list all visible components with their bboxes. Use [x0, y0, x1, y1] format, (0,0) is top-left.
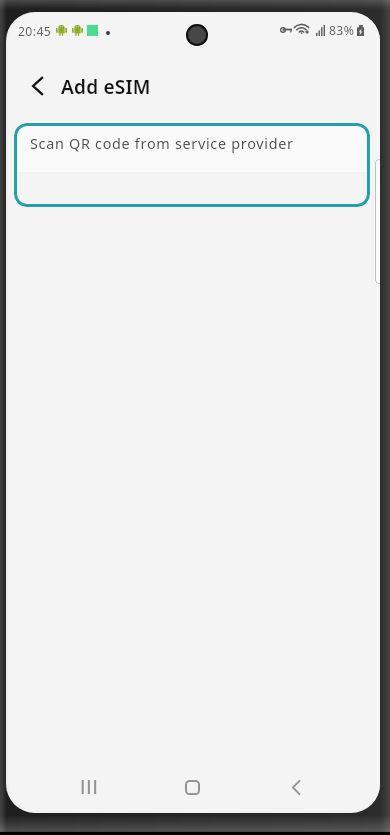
button[interactable]: Back	[18, 61, 62, 105]
button[interactable]: Back	[270, 761, 322, 812]
button[interactable]: Home	[166, 761, 218, 812]
button[interactable]: Recent apps	[62, 761, 114, 812]
button[interactable]: Scan QR code from service provider	[14, 123, 370, 207]
staticText: 83%	[329, 22, 355, 39]
staticText: Scan QR code from service provider	[30, 134, 294, 154]
staticText: 20:45	[18, 23, 52, 40]
staticText: Add eSIM	[61, 74, 151, 100]
